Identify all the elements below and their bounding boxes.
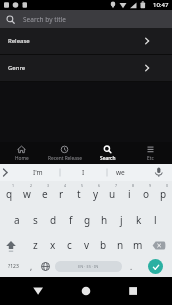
staticText: Recent Release: [48, 155, 82, 162]
staticText: we: [116, 168, 125, 177]
staticText: Release: [8, 37, 30, 45]
button[interactable]: [0, 277, 58, 305]
staticText: x: [50, 238, 56, 252]
button[interactable]: n: [112, 233, 129, 256]
staticText: Home: [15, 155, 29, 162]
button[interactable]: we: [107, 164, 133, 181]
button[interactable]: Search by title: [0, 10, 172, 28]
staticText: 8: [132, 183, 135, 188]
staticText: z: [33, 238, 38, 252]
staticText: d: [50, 213, 57, 227]
button[interactable]: d: [44, 207, 62, 233]
button[interactable]: Home: [0, 142, 43, 164]
staticText: 9: [149, 183, 152, 188]
staticText: q: [6, 187, 13, 201]
staticText: y: [93, 187, 99, 201]
button[interactable]: e: [36, 181, 53, 207]
staticText: 10:47: [153, 1, 169, 9]
staticText: 6: [98, 183, 101, 188]
staticText: 4: [64, 183, 67, 188]
button[interactable]: Search: [86, 142, 129, 164]
staticText: w: [23, 187, 31, 201]
staticText: 3: [47, 183, 50, 188]
button[interactable]: m: [129, 233, 146, 256]
staticText: c: [67, 238, 72, 252]
button[interactable]: r: [53, 181, 70, 207]
staticText: Genre: [8, 64, 26, 72]
button[interactable]: [115, 277, 172, 305]
button[interactable]: [0, 233, 26, 256]
staticText: u: [109, 187, 116, 201]
button[interactable]: ,: [24, 256, 38, 277]
staticText: 7: [115, 183, 118, 188]
staticText: b: [100, 238, 107, 252]
button[interactable]: l: [147, 207, 164, 233]
button[interactable]: .: [124, 256, 138, 277]
button[interactable]: v: [78, 233, 95, 256]
staticText: p: [160, 187, 167, 201]
staticText: n: [117, 238, 124, 252]
staticText: l: [154, 213, 157, 227]
staticText: Etc: [147, 155, 154, 162]
staticText: m: [133, 238, 143, 252]
button[interactable]: o: [138, 181, 155, 207]
button[interactable]: x: [44, 233, 61, 256]
button[interactable]: Genre: [0, 55, 172, 81]
staticText: 0: [166, 183, 169, 188]
staticText: EN · ES · IN: [78, 264, 99, 269]
staticText: v: [84, 238, 90, 252]
staticText: I: [82, 168, 85, 177]
staticText: r: [59, 187, 64, 201]
button[interactable]: EN · ES · IN: [55, 261, 122, 272]
button[interactable]: [38, 256, 53, 277]
staticText: Search by title: [23, 15, 66, 24]
staticText: a: [14, 213, 20, 227]
button[interactable]: I: [60, 164, 107, 181]
staticText: f: [69, 213, 73, 227]
button[interactable]: y: [87, 181, 104, 207]
button[interactable]: a: [8, 207, 26, 233]
button[interactable]: z: [26, 233, 44, 256]
staticText: 5: [81, 183, 84, 188]
button[interactable]: t: [70, 181, 87, 207]
button[interactable]: u: [104, 181, 121, 207]
staticText: Search: [100, 155, 116, 162]
button[interactable]: k: [130, 207, 147, 233]
button[interactable]: ?123: [0, 256, 26, 277]
button[interactable]: Release: [0, 28, 172, 54]
staticText: j: [120, 213, 123, 227]
staticText: g: [84, 213, 91, 227]
staticText: i: [128, 187, 131, 201]
staticText: ?123: [8, 263, 19, 270]
button[interactable]: f: [62, 207, 79, 233]
button[interactable]: s: [26, 207, 44, 233]
button[interactable]: c: [61, 233, 78, 256]
staticText: k: [136, 213, 142, 227]
staticText: h: [101, 213, 108, 227]
button[interactable]: [58, 277, 115, 305]
staticText: s: [33, 213, 38, 227]
button[interactable]: h: [96, 207, 113, 233]
button[interactable]: b: [95, 233, 112, 256]
staticText: 1: [12, 183, 15, 188]
staticText: .: [130, 261, 133, 272]
staticText: I'm: [33, 168, 43, 177]
button[interactable]: [148, 259, 163, 274]
staticText: 2: [30, 183, 33, 188]
staticText: e: [42, 187, 48, 201]
button[interactable]: q: [0, 181, 18, 207]
staticText: ,: [30, 261, 33, 272]
button[interactable]: i: [121, 181, 138, 207]
button[interactable]: Recent Release: [43, 142, 86, 164]
button[interactable]: [146, 233, 172, 256]
button[interactable]: g: [79, 207, 96, 233]
button[interactable]: Etc: [129, 142, 172, 164]
staticText: o: [143, 187, 150, 201]
staticText: t: [77, 187, 81, 201]
button[interactable]: [0, 164, 14, 181]
button[interactable]: w: [18, 181, 36, 207]
button[interactable]: j: [113, 207, 130, 233]
button[interactable]: I'm: [16, 164, 60, 181]
button[interactable]: p: [155, 181, 172, 207]
